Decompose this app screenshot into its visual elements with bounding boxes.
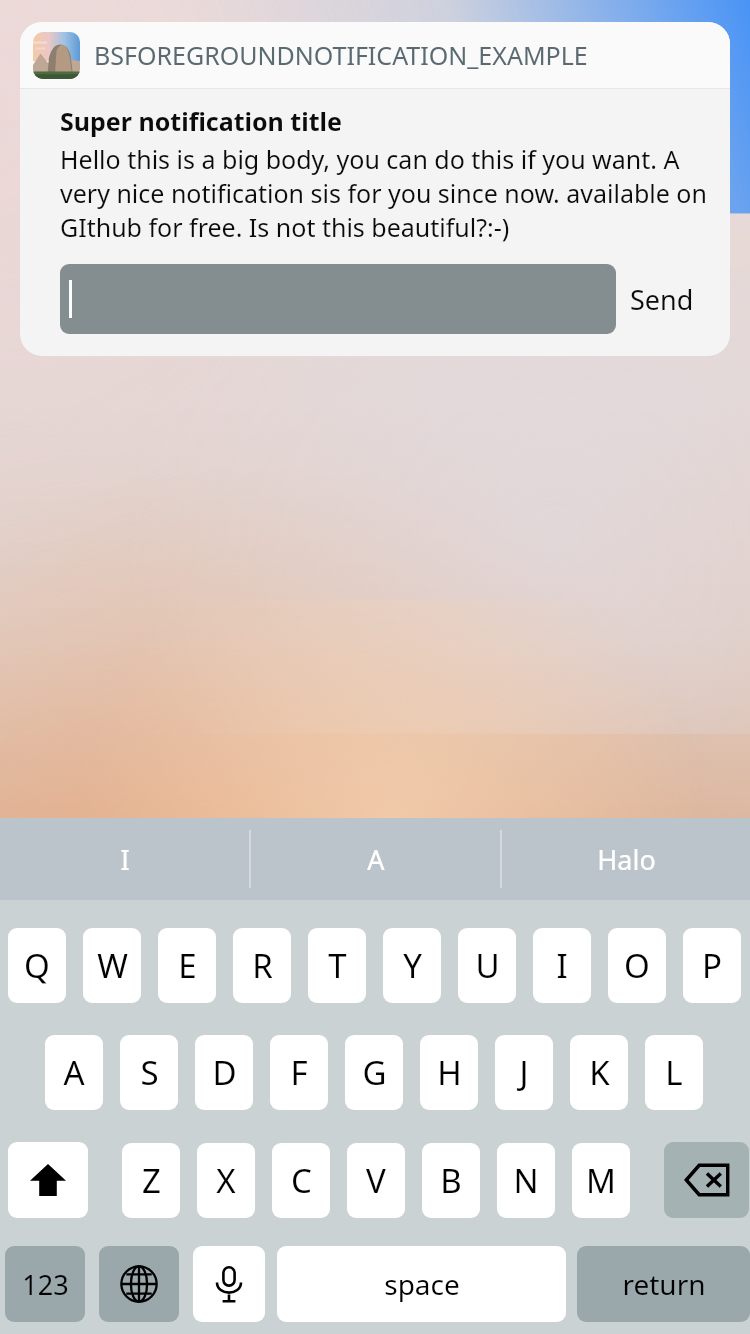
button[interactable]: K: [570, 1035, 628, 1110]
staticText: W: [97, 943, 128, 988]
staticText: R: [252, 943, 273, 988]
button[interactable]: I: [0, 818, 249, 900]
staticText: X: [216, 1158, 236, 1203]
button[interactable]: 123: [5, 1246, 85, 1322]
staticText: G: [362, 1050, 387, 1095]
staticText: A: [63, 1050, 85, 1095]
button[interactable]: Halo: [502, 818, 750, 900]
button[interactable]: E: [158, 928, 216, 1003]
staticText: F: [290, 1050, 308, 1095]
staticText: T: [328, 943, 347, 988]
button[interactable]: return: [577, 1246, 750, 1322]
button[interactable]: D: [195, 1035, 253, 1110]
staticText: J: [519, 1050, 529, 1095]
staticText: U: [475, 943, 500, 988]
staticText: V: [366, 1158, 386, 1203]
staticText: space: [384, 1265, 460, 1303]
button[interactable]: Send: [616, 273, 708, 326]
staticText: Z: [142, 1158, 161, 1203]
button[interactable]: Q: [8, 928, 66, 1003]
button[interactable]: H: [420, 1035, 478, 1110]
staticText: O: [624, 943, 650, 988]
staticText: A: [367, 841, 385, 878]
button[interactable]: T: [308, 928, 366, 1003]
button[interactable]: Backspace: [664, 1142, 749, 1218]
staticText: 123: [22, 1266, 69, 1303]
button[interactable]: Dictation: [193, 1246, 265, 1322]
staticText: P: [702, 943, 722, 988]
staticText: BSFOREGROUNDNOTIFICATION_EXAMPLE: [94, 38, 588, 72]
staticText: L: [665, 1050, 683, 1095]
staticText: M: [586, 1158, 616, 1203]
button[interactable]: space: [277, 1246, 566, 1322]
staticText: H: [437, 1050, 462, 1095]
button[interactable]: J: [495, 1035, 553, 1110]
button[interactable]: C: [272, 1143, 330, 1218]
staticText: I: [120, 841, 130, 878]
button[interactable]: N: [497, 1143, 555, 1218]
button[interactable]: U: [458, 928, 516, 1003]
staticText: N: [513, 1158, 539, 1203]
button[interactable]: Shift: [8, 1142, 88, 1218]
staticText: Send: [630, 281, 694, 318]
button[interactable]: A: [251, 818, 500, 900]
button[interactable]: Reply text field: [60, 264, 616, 334]
staticText: D: [212, 1050, 237, 1095]
button[interactable]: I: [533, 928, 591, 1003]
staticText: Y: [403, 943, 422, 988]
staticText: Q: [24, 943, 50, 988]
button[interactable]: Z: [122, 1143, 180, 1218]
button[interactable]: BSFOREGROUNDNOTIFICATION_EXAMPLE: [20, 22, 730, 356]
button[interactable]: W: [83, 928, 141, 1003]
staticText: C: [291, 1158, 312, 1203]
staticText: K: [589, 1050, 610, 1095]
button[interactable]: X: [197, 1143, 255, 1218]
button[interactable]: P: [683, 928, 741, 1003]
button[interactable]: M: [572, 1143, 630, 1218]
button[interactable]: B: [422, 1143, 480, 1218]
button[interactable]: R: [233, 928, 291, 1003]
button[interactable]: O: [608, 928, 666, 1003]
button[interactable]: V: [347, 1143, 405, 1218]
staticText: B: [440, 1158, 462, 1203]
staticText: I: [556, 943, 568, 988]
button[interactable]: Change keyboard: [99, 1246, 179, 1322]
staticText: S: [140, 1050, 159, 1095]
button[interactable]: G: [345, 1035, 403, 1110]
button[interactable]: S: [120, 1035, 178, 1110]
staticText: Super notification title: [60, 104, 342, 138]
staticText: Hello this is a big body, you can do thi…: [60, 142, 708, 244]
button[interactable]: L: [645, 1035, 703, 1110]
staticText: return: [622, 1265, 706, 1303]
staticText: Halo: [597, 841, 656, 878]
button[interactable]: Y: [383, 928, 441, 1003]
button[interactable]: A: [45, 1035, 103, 1110]
button[interactable]: F: [270, 1035, 328, 1110]
staticText: E: [178, 943, 197, 988]
